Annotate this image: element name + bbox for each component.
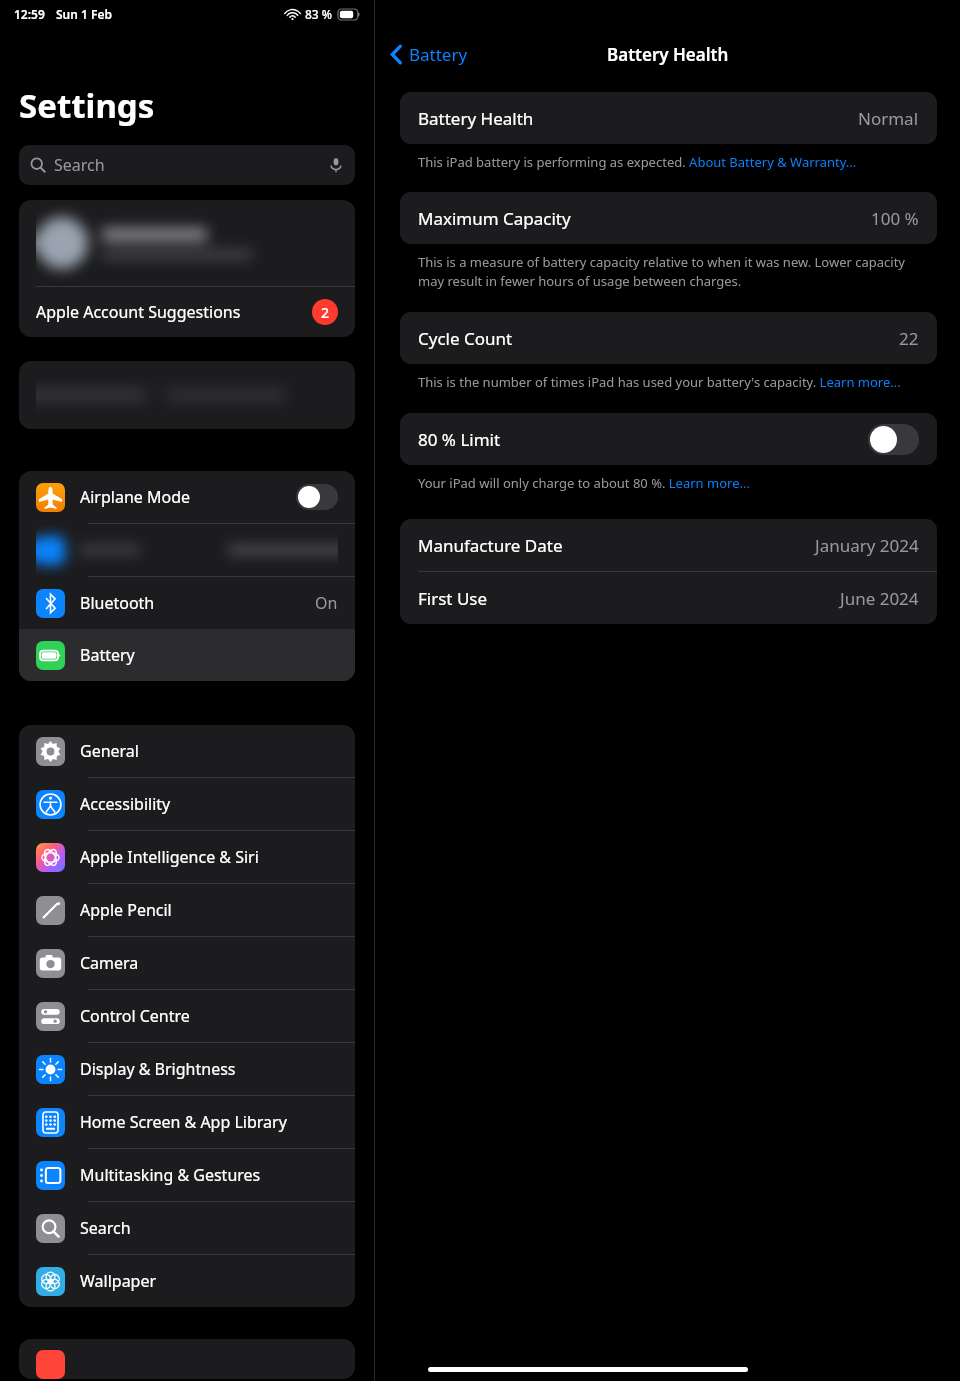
staticText: Sun 1 Feb <box>56 6 113 22</box>
staticText: Battery Health <box>607 43 729 66</box>
staticText: 22 <box>899 327 919 350</box>
staticText: 83 % <box>305 6 333 22</box>
button[interactable]: Home Screen & App Library <box>19 1096 355 1148</box>
staticText: 100 % <box>871 207 919 230</box>
button[interactable]: Control Centre <box>19 990 355 1042</box>
staticText: This iPad battery is performing as expec… <box>418 153 857 171</box>
button[interactable]: Search <box>19 1202 355 1254</box>
button[interactable]: 80 % Limit <box>400 413 937 465</box>
staticText: Bluetooth <box>80 592 155 614</box>
button[interactable]: Apple Account Suggestions <box>19 287 355 337</box>
staticText: January 2024 <box>815 534 919 557</box>
button[interactable]: Battery <box>387 37 472 72</box>
staticText: Apple Intelligence & Siri <box>80 846 259 868</box>
staticText: Apple Account Suggestions <box>36 301 241 323</box>
button[interactable] <box>19 361 355 429</box>
staticText: Camera <box>80 952 139 974</box>
staticText: Manufacture Date <box>418 534 563 557</box>
button[interactable]: First Use <box>400 572 937 624</box>
staticText: Multitasking & Gestures <box>80 1164 261 1186</box>
staticText: Maximum Capacity <box>418 207 571 230</box>
staticText: Home Screen & App Library <box>80 1111 287 1133</box>
staticText: 80 % Limit <box>418 428 501 451</box>
button[interactable]: Toggle off <box>868 424 919 455</box>
staticText: Search <box>80 1217 131 1239</box>
staticText: General <box>80 740 139 762</box>
staticText: Your iPad will only charge to about 80 %… <box>418 474 750 492</box>
button[interactable]: Accessibility <box>19 778 355 830</box>
staticText: This is a measure of battery capacity re… <box>418 253 919 290</box>
button[interactable]: Camera <box>19 937 355 989</box>
staticText: Cycle Count <box>418 327 513 350</box>
staticText: Display & Brightness <box>80 1058 236 1080</box>
button[interactable] <box>19 524 355 576</box>
staticText: First Use <box>418 587 488 610</box>
staticText: Control Centre <box>80 1005 190 1027</box>
staticText: Search <box>54 154 105 176</box>
button[interactable]: Display & Brightness <box>19 1043 355 1095</box>
staticText: On <box>315 592 338 614</box>
button[interactable]: Manufacture Date <box>400 519 937 571</box>
button[interactable]: General <box>19 725 355 777</box>
button[interactable]: Bluetooth <box>19 577 355 629</box>
button[interactable]: Cycle Count <box>400 312 937 364</box>
button[interactable]: Battery <box>19 629 355 681</box>
staticText: Normal <box>858 107 919 130</box>
staticText: Accessibility <box>80 793 171 815</box>
staticText: 12:59 <box>14 6 45 22</box>
staticText: June 2024 <box>840 587 919 610</box>
button[interactable] <box>19 200 355 286</box>
button[interactable]: Airplane Mode off <box>296 484 338 510</box>
staticText: Battery Health <box>418 107 534 130</box>
button[interactable]: Airplane Mode <box>19 471 355 523</box>
staticText: Battery <box>80 644 135 666</box>
staticText: Battery <box>409 43 468 66</box>
button[interactable]: Search <box>19 145 355 185</box>
staticText: 2 <box>321 303 330 322</box>
staticText: This is the number of times iPad has use… <box>418 373 901 391</box>
button[interactable]: Apple Intelligence & Siri <box>19 831 355 883</box>
staticText: Settings <box>19 83 155 128</box>
staticText: Apple Pencil <box>80 899 172 921</box>
button[interactable] <box>19 1339 355 1379</box>
button[interactable]: Apple Pencil <box>19 884 355 936</box>
staticText: Airplane Mode <box>80 486 191 508</box>
staticText: Wallpaper <box>80 1270 157 1292</box>
button[interactable]: Maximum Capacity <box>400 192 937 244</box>
button[interactable]: Multitasking & Gestures <box>19 1149 355 1201</box>
button[interactable]: Wallpaper <box>19 1255 355 1307</box>
button[interactable]: Battery Health <box>400 92 937 144</box>
